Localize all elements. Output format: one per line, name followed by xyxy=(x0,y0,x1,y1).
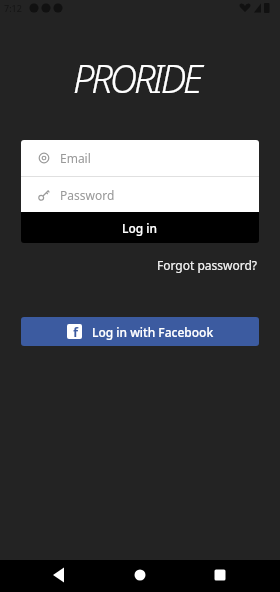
staticText: f xyxy=(73,324,79,338)
staticText: Email xyxy=(60,150,91,166)
button[interactable]: Email xyxy=(21,140,259,176)
button[interactable] xyxy=(0,560,94,592)
button[interactable]: Password xyxy=(21,177,259,212)
staticText: Log in xyxy=(122,220,158,236)
staticText: 7:12 xyxy=(4,2,22,14)
staticText: PRORIDE xyxy=(73,52,200,104)
button[interactable] xyxy=(187,560,280,592)
staticText: Password xyxy=(60,187,115,203)
button[interactable]: f xyxy=(21,317,259,346)
staticText: Log in with Facebook xyxy=(92,324,214,340)
button[interactable]: Forgot password? xyxy=(157,257,258,273)
staticText: Forgot password? xyxy=(157,257,258,273)
button[interactable]: Log in xyxy=(21,212,259,243)
button[interactable] xyxy=(94,560,187,592)
